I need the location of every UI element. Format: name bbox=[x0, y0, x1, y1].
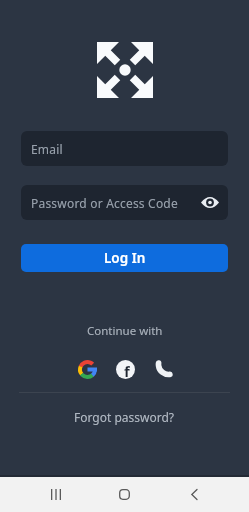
staticText: Email bbox=[31, 141, 219, 157]
staticText: f bbox=[124, 361, 130, 379]
staticText: Log In bbox=[104, 249, 146, 267]
button[interactable] bbox=[154, 361, 172, 379]
staticText: Password or Access Code bbox=[31, 195, 201, 211]
button[interactable]: Password or Access Code bbox=[21, 185, 228, 220]
button[interactable] bbox=[90, 477, 159, 512]
staticText: Continue with bbox=[87, 323, 163, 339]
button[interactable]: f bbox=[116, 360, 135, 379]
button[interactable] bbox=[21, 477, 90, 512]
button[interactable]: Log In bbox=[21, 244, 228, 272]
button[interactable] bbox=[78, 360, 97, 379]
button[interactable] bbox=[159, 477, 228, 512]
button[interactable]: Email bbox=[21, 131, 228, 166]
button[interactable]: Forgot password? bbox=[74, 409, 175, 425]
